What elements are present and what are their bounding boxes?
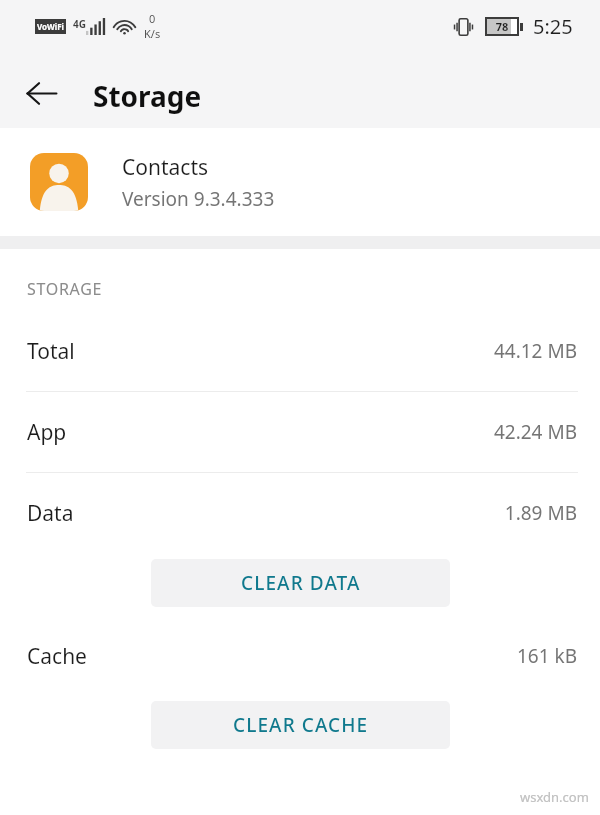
staticText: 44.12 MB [493,338,577,364]
button[interactable]: Data [0,493,600,533]
staticText: 78 [487,19,517,34]
staticText: 42.24 MB [493,419,577,445]
staticText: VoWiFi [37,21,64,32]
staticText: 0 [149,11,156,26]
button[interactable]: App [0,412,600,452]
staticText: 161 kB [516,643,577,669]
button[interactable]: CLEAR DATA [151,559,450,607]
staticText: Data [27,499,74,528]
button[interactable]: Back [16,68,66,118]
staticText: K/s [144,26,161,41]
staticText: Storage [93,77,202,115]
staticText: Version 9.3.4.333 [122,186,275,212]
staticText: CLEAR CACHE [233,712,369,738]
staticText: wsxdn.com [520,788,589,806]
staticText: STORAGE [27,278,103,300]
staticText: CLEAR DATA [241,570,361,596]
staticText: 5:25 [533,13,573,40]
staticText: App [27,418,67,447]
staticText: 1.89 MB [504,500,577,526]
staticText: Total [27,337,75,366]
staticText: Cache [27,642,87,671]
staticText: 4G [73,17,86,31]
staticText: Contacts [122,153,209,182]
button[interactable]: Total [0,331,600,371]
button[interactable]: Cache [0,636,600,676]
button[interactable]: CLEAR CACHE [151,701,450,749]
